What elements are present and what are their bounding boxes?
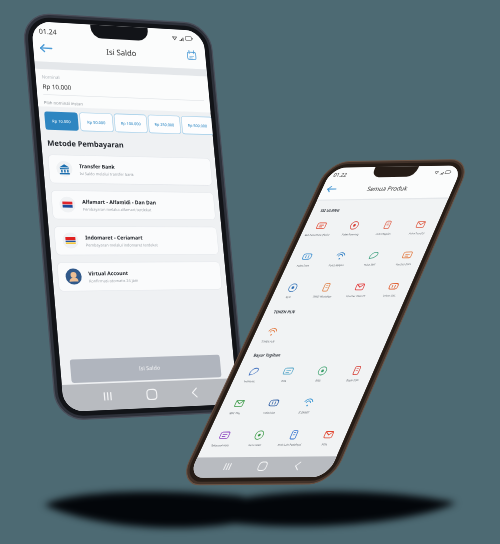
button[interactable] (0, 0, 500, 544)
